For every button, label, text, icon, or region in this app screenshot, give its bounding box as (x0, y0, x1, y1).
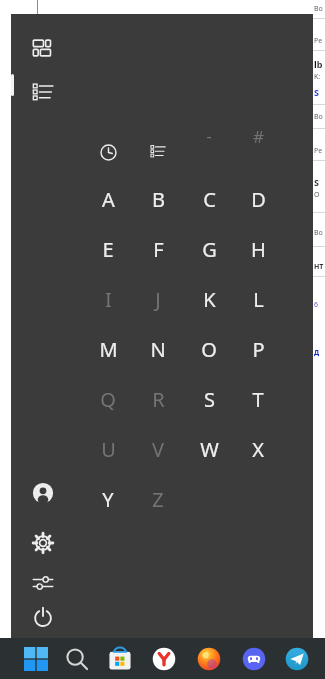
staticText: T (252, 386, 264, 413)
button[interactable]: N (139, 333, 177, 365)
button[interactable]: Microsoft Store (103, 641, 137, 676)
staticText: I (105, 286, 112, 313)
button[interactable]: W (190, 433, 228, 465)
staticText: O (314, 190, 320, 200)
button[interactable]: V (139, 433, 177, 465)
staticText: E (102, 236, 114, 263)
button[interactable]: All apps (142, 136, 174, 168)
button[interactable]: J (139, 283, 177, 315)
button[interactable]: M (89, 333, 127, 365)
staticText: M (99, 336, 118, 363)
staticText: A (102, 186, 115, 213)
button[interactable]: P (239, 333, 277, 365)
staticText: Q (100, 386, 116, 413)
button[interactable]: Firefox (192, 641, 226, 676)
button[interactable]: D (239, 183, 277, 215)
staticText: U (101, 436, 116, 463)
staticText: V (152, 436, 164, 463)
staticText: J (155, 286, 161, 313)
button[interactable]: A (89, 183, 127, 215)
staticText: Bo (314, 228, 323, 238)
staticText: lb (314, 58, 323, 70)
staticText: C (203, 186, 216, 213)
button[interactable]: Power (21, 597, 65, 637)
staticText: - (206, 125, 212, 147)
staticText: 6 (314, 300, 319, 310)
staticText: X (252, 436, 264, 463)
button[interactable]: O (190, 333, 228, 365)
staticText: B (152, 186, 165, 213)
staticText: K (203, 286, 216, 313)
button[interactable]: T (239, 383, 277, 415)
staticText: Y (102, 486, 114, 513)
button[interactable]: I (89, 283, 127, 315)
staticText: O (201, 336, 217, 363)
staticText: W (200, 436, 219, 463)
staticText: Z (152, 486, 164, 513)
staticText: N (150, 336, 166, 363)
staticText: K: (314, 72, 321, 82)
staticText: # (253, 125, 264, 148)
button[interactable]: Yandex Browser (147, 641, 181, 676)
button[interactable]: G (190, 233, 228, 265)
button[interactable]: List view (21, 73, 65, 113)
button[interactable]: F (139, 233, 177, 265)
button[interactable]: U (89, 433, 127, 465)
button[interactable]: Search (60, 641, 94, 676)
button[interactable]: R (139, 383, 177, 415)
staticText: R (152, 386, 165, 413)
button[interactable]: B (139, 183, 177, 215)
button[interactable]: Telegram (280, 641, 314, 676)
button[interactable]: Dashboard (21, 28, 65, 68)
staticText: D (251, 186, 266, 213)
staticText: H (251, 236, 266, 263)
button[interactable]: Account (21, 473, 65, 513)
staticText: д (314, 346, 320, 357)
staticText: G (202, 236, 217, 263)
button[interactable]: L (239, 283, 277, 315)
button[interactable]: Sliders (21, 563, 65, 603)
staticText: HT (314, 262, 324, 272)
staticText: S (314, 176, 319, 188)
button[interactable]: Q (89, 383, 127, 415)
staticText: L (253, 286, 264, 313)
button[interactable]: # (239, 120, 277, 152)
staticText: Pe (314, 36, 323, 46)
button[interactable]: Z (139, 483, 177, 515)
button[interactable]: Start (19, 641, 53, 676)
button[interactable]: C (190, 183, 228, 215)
button[interactable]: S (190, 383, 228, 415)
staticText: F (153, 236, 164, 263)
staticText: Bo (314, 4, 323, 14)
button[interactable]: E (89, 233, 127, 265)
staticText: S (204, 386, 215, 413)
staticText: Bo (314, 112, 323, 122)
button[interactable]: Recent (92, 136, 124, 168)
staticText: S (314, 86, 319, 98)
button[interactable]: H (239, 233, 277, 265)
button[interactable]: K (190, 283, 228, 315)
button[interactable]: Discord (237, 641, 271, 676)
staticText: Pe (314, 146, 323, 156)
button[interactable]: Settings (21, 523, 65, 563)
button[interactable]: X (239, 433, 277, 465)
staticText: P (252, 336, 265, 363)
button[interactable]: Y (89, 483, 127, 515)
button[interactable]: - (190, 120, 228, 152)
